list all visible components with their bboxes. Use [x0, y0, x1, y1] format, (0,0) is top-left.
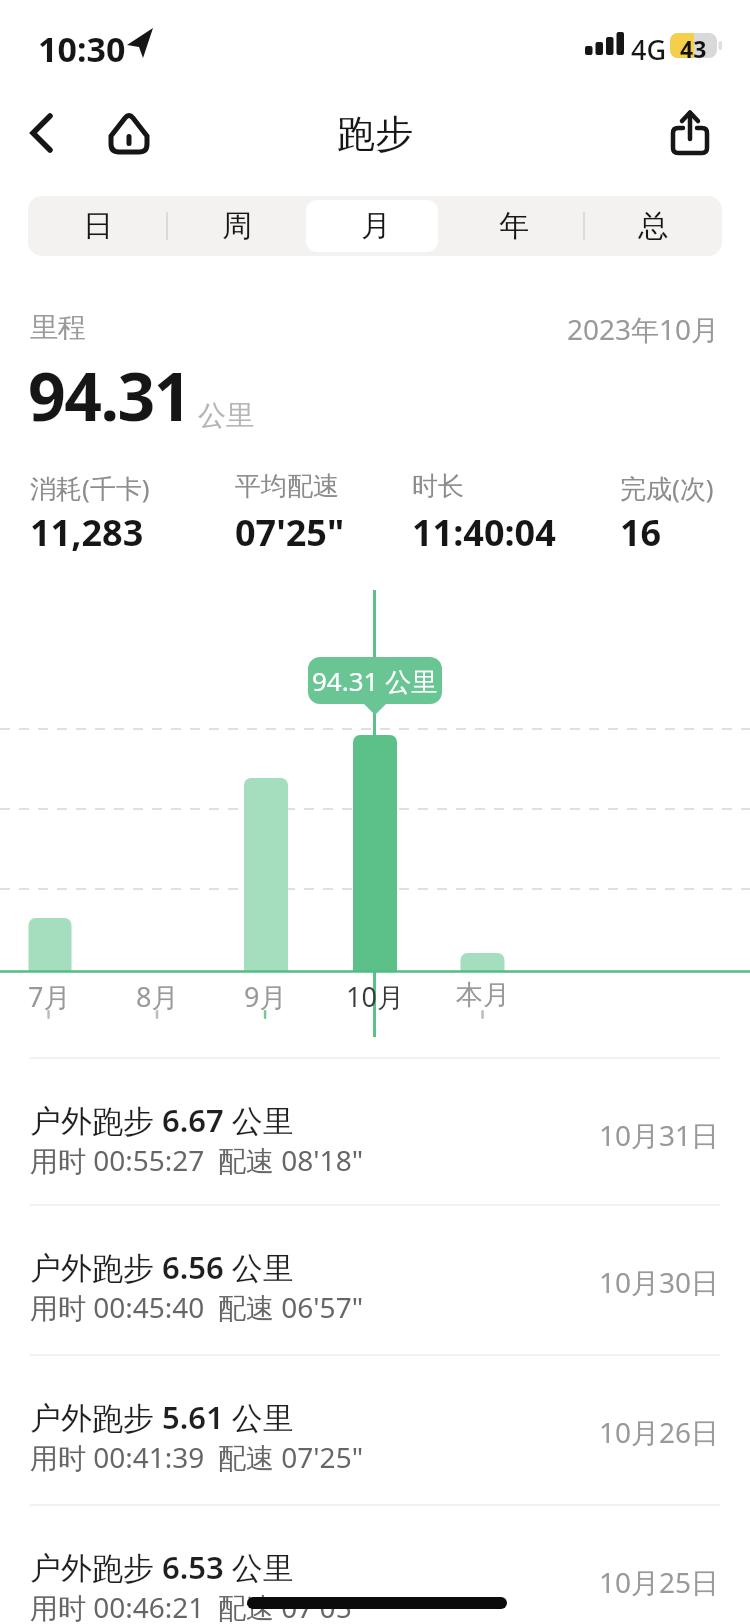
staticText: 94.31 [28, 350, 191, 440]
staticText: 时长 [412, 470, 464, 503]
staticText: 10月31日 [599, 1116, 720, 1154]
button[interactable]: 户外跑步 6.53 公里 [0, 1505, 750, 1624]
staticText: 11:40:04 [412, 508, 556, 557]
staticText: 用时 00:46:21 [30, 1588, 205, 1624]
staticText: 7月 [28, 978, 71, 1015]
staticText: 公里 [198, 398, 254, 433]
staticText: 配速 06'57" [218, 1288, 364, 1326]
staticText: 8月 [136, 978, 179, 1015]
staticText: 户外跑步 6.53 公里 [30, 1546, 294, 1588]
staticText: 2023年10月 [567, 310, 720, 348]
staticText: 日 [83, 207, 113, 245]
staticText: 10:30 [38, 26, 126, 72]
staticText: 完成(次) [620, 470, 714, 506]
staticText: 10月25日 [599, 1563, 720, 1601]
staticText: 用时 00:41:39 [30, 1438, 205, 1476]
staticText: 户外跑步 6.67 公里 [30, 1099, 294, 1141]
button[interactable]: 月 [306, 196, 445, 256]
staticText: 94.31 公里 [312, 663, 438, 699]
staticText: 消耗(千卡) [30, 470, 150, 506]
button[interactable]: 年 [444, 196, 583, 256]
staticText: 平均配速 [235, 470, 339, 503]
button[interactable]: 户外跑步 6.56 公里 [0, 1205, 750, 1353]
staticText: 43 [680, 33, 707, 64]
button[interactable] [100, 103, 158, 161]
staticText: 周 [222, 207, 252, 245]
button[interactable]: 日 [28, 196, 167, 256]
staticText: 户外跑步 6.56 公里 [30, 1246, 294, 1288]
staticText: 16 [620, 508, 662, 557]
staticText: 4G [631, 31, 667, 68]
staticText: 配速 07'25" [218, 1438, 364, 1476]
staticText: 07'25" [235, 508, 345, 557]
staticText: 户外跑步 5.61 公里 [30, 1396, 294, 1438]
button[interactable]: 户外跑步 5.61 公里 [0, 1355, 750, 1503]
button[interactable]: 户外跑步 6.67 公里 [0, 1058, 750, 1206]
staticText: 配速 07'05" [218, 1588, 364, 1624]
staticText: 10月30日 [599, 1263, 720, 1301]
staticText: 9月 [244, 978, 287, 1015]
staticText: 本月 [456, 978, 510, 1012]
staticText: 10月 [346, 978, 404, 1015]
button[interactable] [18, 105, 70, 157]
staticText: 里程 [30, 310, 86, 345]
staticText: 用时 00:45:40 [30, 1288, 205, 1326]
staticText: 月 [361, 207, 391, 245]
button[interactable]: 周 [167, 196, 306, 256]
staticText: 用时 00:55:27 [30, 1141, 205, 1179]
staticText: 总 [638, 207, 668, 245]
staticText: 11,283 [30, 508, 144, 557]
button[interactable]: 总 [583, 196, 722, 256]
staticText: 跑步 [337, 110, 413, 158]
staticText: 配速 08'18" [218, 1141, 364, 1179]
staticText: 10月26日 [599, 1413, 720, 1451]
staticText: 年 [499, 207, 529, 245]
button[interactable] [663, 103, 721, 161]
